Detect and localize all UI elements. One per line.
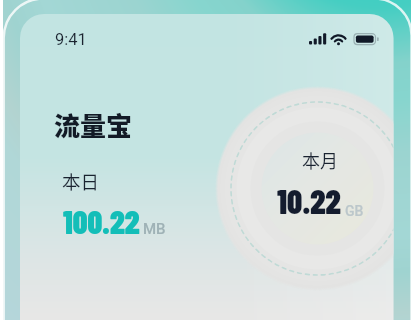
- other: Status icons: [309, 32, 379, 46]
- staticText: MB: [143, 220, 166, 238]
- staticText: 本日: [62, 168, 100, 195]
- staticText: 流量宝: [54, 106, 133, 144]
- staticText: 9:41: [55, 30, 87, 49]
- staticText: 10.22: [277, 181, 341, 221]
- staticText: 本月: [302, 147, 338, 173]
- staticText: GB: [345, 203, 364, 219]
- staticText: 100.22: [63, 202, 140, 240]
